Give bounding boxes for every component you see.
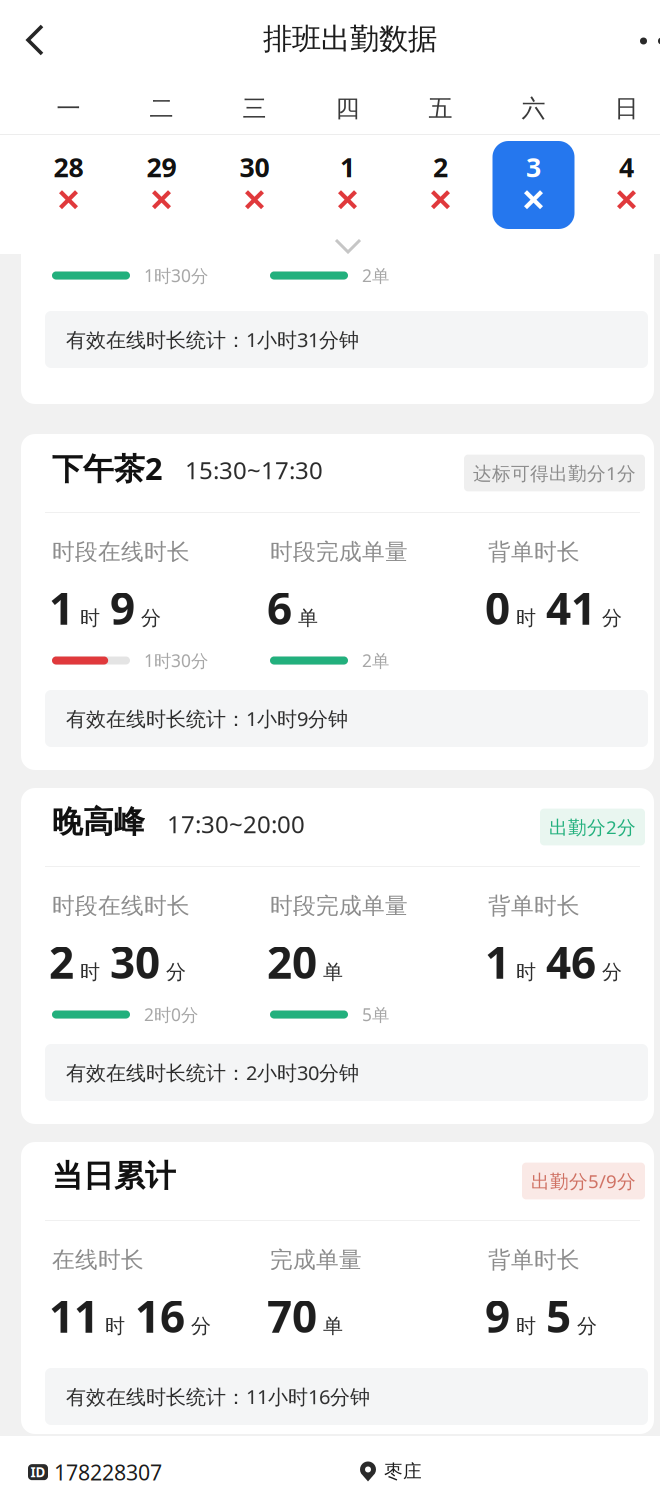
button[interactable]: 30 xyxy=(208,136,301,234)
staticText: 20 xyxy=(267,933,317,991)
staticText: 二 xyxy=(149,94,173,123)
staticText: 六 xyxy=(521,94,545,123)
staticText: 分 xyxy=(577,1314,597,1338)
staticText: 30 xyxy=(239,149,269,185)
staticText: 时段完成单量 xyxy=(270,538,408,566)
staticText: 0 xyxy=(485,579,510,637)
staticText: 有效在线时长统计：11小时16分钟 xyxy=(66,1383,370,1410)
staticText: 31 xyxy=(110,192,160,250)
button[interactable]: 1 xyxy=(301,136,394,234)
staticText: 出勤分5/9分 xyxy=(531,1169,636,1193)
staticText: 背单时长 xyxy=(488,538,580,566)
staticText: ID xyxy=(30,1463,45,1481)
staticText: 背单时长 xyxy=(488,892,580,920)
staticText: 1 xyxy=(485,933,510,991)
staticText: 9 xyxy=(485,1287,510,1345)
staticText: 时 xyxy=(80,606,100,630)
staticText: 46 xyxy=(546,933,596,991)
staticText: 30 xyxy=(110,933,160,991)
staticText: 分 xyxy=(141,606,161,630)
staticText: 1 xyxy=(340,149,355,185)
button[interactable]: 2 xyxy=(394,136,487,234)
staticText: 2 xyxy=(433,149,448,185)
staticText: 达标可得出勤分1分 xyxy=(473,461,636,485)
staticText: 29 xyxy=(146,149,176,185)
staticText: 在线时长 xyxy=(52,1246,144,1274)
button[interactable]: 更多 xyxy=(640,0,660,82)
staticText: 时段在线时长 xyxy=(52,538,190,566)
staticText: 70 xyxy=(267,1287,317,1345)
staticText: 日 xyxy=(614,94,638,123)
staticText: 时 xyxy=(516,219,536,243)
staticText: 9 xyxy=(110,579,135,637)
staticText: 178228307 xyxy=(54,1458,162,1486)
staticText: 4 xyxy=(619,149,634,185)
staticText: 一 xyxy=(56,94,80,123)
staticText: 2时0分 xyxy=(144,1003,198,1026)
staticText: 16 xyxy=(135,1287,185,1345)
staticText: 5 xyxy=(546,1287,571,1345)
button[interactable]: 29 xyxy=(115,136,208,234)
button[interactable]: 返回 xyxy=(0,0,74,82)
staticText: 3 xyxy=(526,149,541,185)
staticText: 28 xyxy=(53,149,83,185)
staticText: 分 xyxy=(166,960,186,984)
staticText: 1 xyxy=(485,192,510,250)
staticText: 分 xyxy=(191,1314,211,1338)
staticText: 当日累计 xyxy=(52,1157,176,1195)
staticText: 时 xyxy=(516,960,536,984)
staticText: 11 xyxy=(49,1287,99,1345)
staticText: 2单 xyxy=(362,264,389,287)
staticText: 时段完成单量 xyxy=(270,892,408,920)
staticText: 1 xyxy=(49,192,74,250)
staticText: 分 xyxy=(602,606,622,630)
staticText: 2单 xyxy=(362,649,389,672)
staticText: 有效在线时长统计：2小时30分钟 xyxy=(66,1059,359,1086)
staticText: 1时30分 xyxy=(144,264,208,287)
staticText: 时 xyxy=(80,960,100,984)
staticText: 单 xyxy=(298,606,318,630)
staticText: 四 xyxy=(335,94,359,123)
staticText: 15:30~17:30 xyxy=(185,454,323,486)
staticText: 时段在线时长 xyxy=(52,892,190,920)
staticText: 2 xyxy=(49,933,74,991)
staticText: 17:30~20:00 xyxy=(167,808,305,840)
staticText: 1时30分 xyxy=(144,649,208,672)
staticText: 枣庄 xyxy=(384,1460,422,1483)
staticText: 背单时长 xyxy=(488,1246,580,1274)
button[interactable]: 3 xyxy=(487,136,580,234)
staticText: 完成单量 xyxy=(270,1246,362,1274)
button[interactable]: 28 xyxy=(22,136,115,234)
staticText: 6 xyxy=(267,579,292,637)
staticText: 5单 xyxy=(362,1003,389,1026)
staticText: 41 xyxy=(546,579,596,637)
staticText: 12 xyxy=(546,192,596,250)
staticText: 下午茶2 xyxy=(52,448,163,488)
staticText: 时 xyxy=(516,606,536,630)
button[interactable]: 4 xyxy=(580,136,660,234)
staticText: 单 xyxy=(323,960,343,984)
staticText: 排班出勤数据 xyxy=(263,21,437,57)
staticText: 有效在线时长统计：1小时9分钟 xyxy=(66,705,348,732)
staticText: 1 xyxy=(49,579,74,637)
staticText: 时 xyxy=(105,1314,125,1338)
staticText: 三 xyxy=(242,94,266,123)
staticText: 有效在线时长统计：1小时31分钟 xyxy=(66,326,359,353)
staticText: 五 xyxy=(428,94,452,123)
staticText: 晚高峰 xyxy=(52,803,145,841)
staticText: 分 xyxy=(602,960,622,984)
staticText: 出勤分2分 xyxy=(549,815,636,839)
staticText: 单 xyxy=(323,1314,343,1338)
staticText: 时 xyxy=(516,1314,536,1338)
